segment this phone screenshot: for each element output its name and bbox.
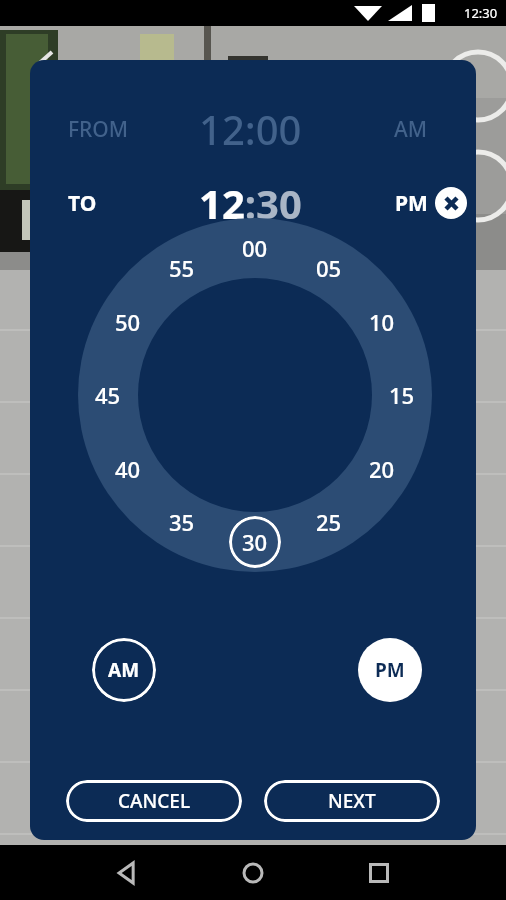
button[interactable]: 10 <box>356 296 408 348</box>
button[interactable]: 25 <box>303 496 355 548</box>
staticText: 40 <box>115 454 141 484</box>
staticText: NEXT <box>328 788 376 814</box>
staticText: CANCEL <box>118 788 191 814</box>
button[interactable]: 30 <box>229 516 281 568</box>
staticText: 00 <box>242 233 268 263</box>
button[interactable]: 05 <box>303 242 355 294</box>
staticText: 12:30 <box>199 176 302 230</box>
button[interactable]: Recents <box>355 849 403 897</box>
staticText: 50 <box>115 307 141 337</box>
staticText: FROM <box>68 115 129 144</box>
button[interactable]: PM <box>358 638 422 702</box>
staticText: AM <box>394 115 428 144</box>
staticText: AM <box>108 657 140 683</box>
button[interactable]: 55 <box>156 242 208 294</box>
staticText: 10 <box>369 307 395 337</box>
button[interactable]: 40 <box>102 443 154 495</box>
staticText: 20 <box>369 454 395 484</box>
button[interactable]: 00 <box>229 222 281 274</box>
staticText: 15 <box>389 380 415 410</box>
staticText: 12:00 <box>199 102 302 156</box>
button[interactable]: Home <box>229 849 277 897</box>
staticText: 30 <box>242 527 268 557</box>
staticText: 12:30 <box>464 4 498 22</box>
staticText: PM <box>375 657 405 683</box>
staticText: TO <box>68 189 97 218</box>
staticText: PM <box>395 189 428 218</box>
button[interactable]: NEXT <box>264 780 440 822</box>
button[interactable]: CANCEL <box>66 780 242 822</box>
button[interactable]: 50 <box>102 296 154 348</box>
button[interactable]: 15 <box>376 369 428 421</box>
button[interactable]: 45 <box>82 369 134 421</box>
staticText: 35 <box>169 507 195 537</box>
staticText: 05 <box>316 253 342 283</box>
button[interactable]: Back <box>103 849 151 897</box>
staticText: 55 <box>169 253 195 283</box>
button[interactable]: 20 <box>356 443 408 495</box>
button[interactable]: FROM <box>30 95 476 163</box>
button[interactable]: TO <box>30 169 476 237</box>
staticText: 45 <box>95 380 121 410</box>
staticText: 25 <box>316 507 342 537</box>
button[interactable]: AM <box>92 638 156 702</box>
button[interactable]: Close <box>435 187 467 219</box>
button[interactable]: 35 <box>156 496 208 548</box>
